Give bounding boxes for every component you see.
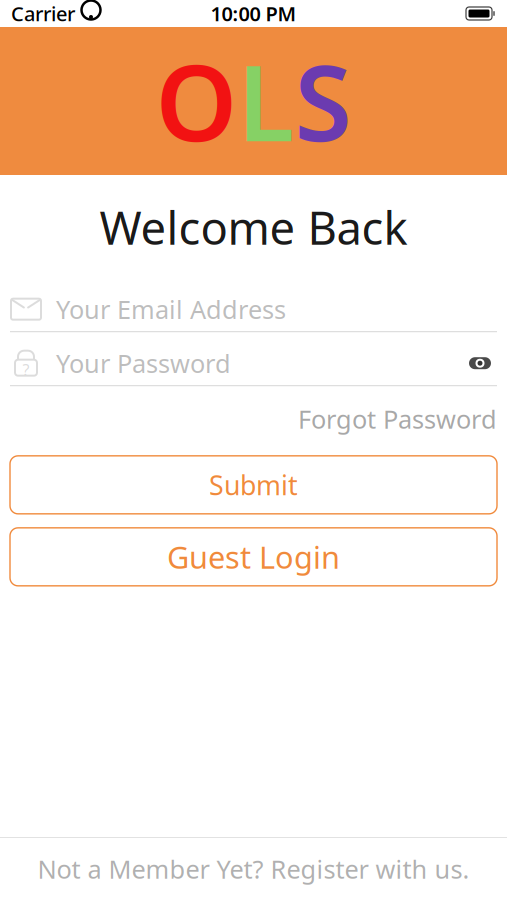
button[interactable]: Forgot Password	[298, 402, 497, 436]
staticText: L	[237, 32, 294, 170]
staticText: 10:00 PM	[210, 0, 296, 27]
staticText: Your Email Address	[56, 292, 286, 326]
button[interactable]: Guest Login	[0, 528, 507, 586]
staticText: ?	[22, 359, 29, 380]
staticText: Carrier	[11, 0, 75, 27]
staticText: Welcome Back	[99, 197, 407, 257]
button[interactable]: Show password	[463, 346, 497, 380]
staticText: Submit	[209, 467, 298, 502]
button[interactable]: Submit	[0, 456, 507, 514]
staticText: S	[294, 32, 351, 170]
staticText: Forgot Password	[298, 402, 497, 436]
staticText: Not a Member Yet? Register with us.	[37, 852, 469, 886]
staticText: Your Password	[56, 346, 231, 380]
staticText: O	[155, 32, 237, 170]
button[interactable]: Not a Member Yet? Register with us.	[0, 837, 507, 900]
staticText: Guest Login	[167, 536, 340, 577]
